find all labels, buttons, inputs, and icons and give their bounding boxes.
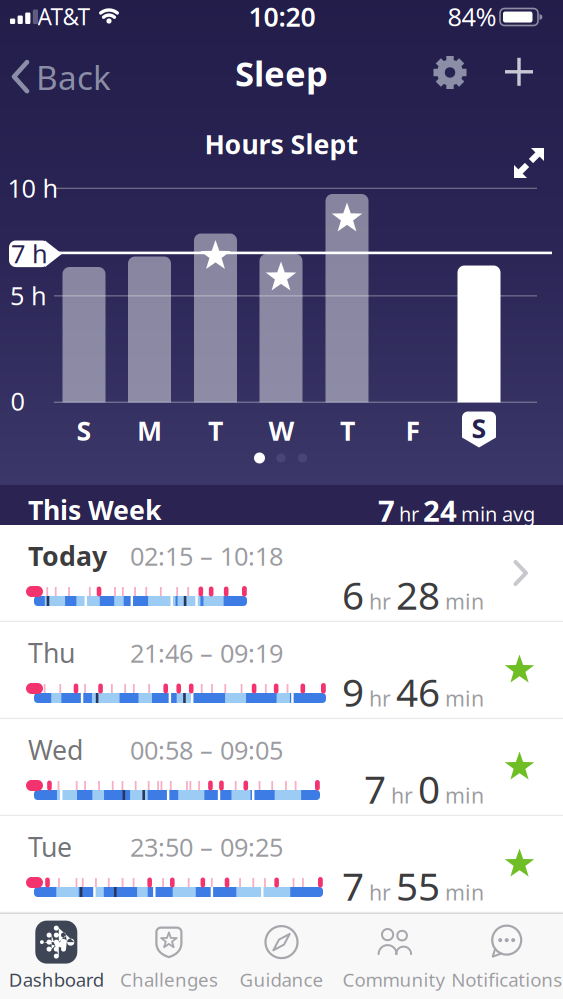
staticText: 7 [342, 860, 364, 911]
staticText: T [340, 413, 355, 448]
staticText: min avg [461, 500, 535, 527]
button[interactable]: Community [338, 913, 450, 999]
staticText: min [445, 684, 484, 712]
staticText: 55 [396, 860, 440, 911]
staticText: hr [369, 684, 391, 712]
staticText: hr [369, 878, 391, 906]
staticText: 84% [447, 0, 496, 33]
staticText: 6 [342, 569, 364, 620]
button[interactable]: Today [0, 525, 563, 622]
staticText: 7 h [11, 237, 48, 270]
staticText: S [76, 413, 91, 448]
button[interactable]: Guidance [225, 913, 338, 999]
staticText: min [445, 781, 484, 809]
staticText: Today [28, 538, 107, 573]
staticText: Dashboard [9, 967, 104, 992]
staticText: hr [391, 781, 413, 809]
staticText: T [208, 413, 223, 448]
staticText: Sleep [235, 50, 328, 96]
staticText: 00:58 – 09:05 [130, 733, 283, 767]
staticText: 02:15 – 10:18 [130, 539, 283, 573]
staticText: min [445, 587, 484, 615]
staticText: This Week [28, 492, 162, 527]
button[interactable]: Notifications [450, 913, 563, 999]
staticText: Community [343, 967, 446, 992]
button[interactable]: Challenges [113, 913, 225, 999]
staticText: 10 h [7, 171, 58, 205]
staticText: 46 [396, 666, 440, 717]
button[interactable]: Thu [0, 622, 563, 719]
staticText: S [471, 410, 486, 446]
staticText: min [445, 878, 484, 906]
staticText: Challenges [120, 967, 218, 992]
staticText: 24 [423, 491, 457, 530]
staticText: hr [369, 587, 391, 615]
staticText: Hours Slept [204, 126, 358, 162]
staticText: Wed [28, 732, 83, 767]
button[interactable]: Settings [430, 52, 470, 92]
staticText: Tue [28, 829, 72, 864]
staticText: M [137, 413, 162, 448]
button[interactable]: Expand chart [512, 146, 546, 180]
staticText: 5 h [10, 279, 47, 312]
staticText: hr [399, 500, 419, 527]
staticText: 10:20 [248, 0, 315, 34]
staticText: 9 [342, 666, 364, 717]
button[interactable]: Tue [0, 816, 563, 913]
staticText: AT&T [37, 1, 90, 31]
button[interactable]: Dashboard [0, 913, 113, 999]
staticText: 7 [364, 763, 386, 814]
staticText: Back [36, 55, 111, 99]
button[interactable]: Add [503, 56, 535, 87]
button[interactable]: Wed [0, 719, 563, 816]
staticText: 7 [378, 491, 395, 530]
staticText: Guidance [239, 967, 323, 992]
staticText: Thu [28, 635, 75, 670]
staticText: 0 [418, 763, 440, 814]
staticText: Notifications [451, 967, 562, 992]
button[interactable]: Back [11, 55, 111, 99]
staticText: 0 [10, 384, 24, 418]
staticText: F [405, 413, 420, 448]
staticText: 21:46 – 09:19 [130, 636, 283, 670]
staticText: W [268, 413, 294, 448]
staticText: 23:50 – 09:25 [130, 830, 283, 864]
staticText: 28 [396, 569, 440, 620]
